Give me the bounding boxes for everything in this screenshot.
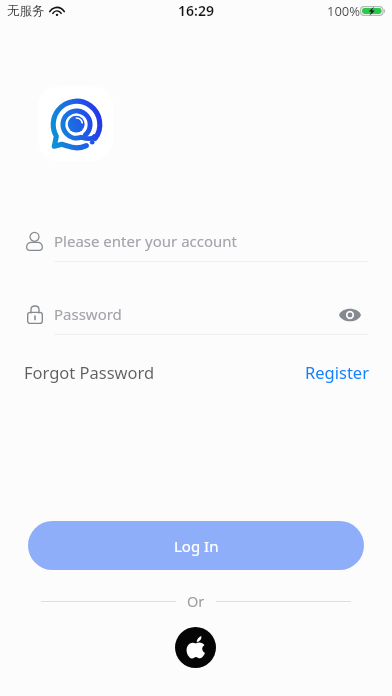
button[interactable]: Forgot Password <box>24 361 155 383</box>
staticText: Or <box>187 591 205 611</box>
staticText: Log In <box>174 536 219 556</box>
staticText: 无服务 <box>7 3 45 19</box>
button[interactable]: Sign in with Apple <box>175 627 216 668</box>
staticText: 100% <box>327 2 361 20</box>
button[interactable]: Show password <box>337 302 362 327</box>
staticText: 16:29 <box>178 1 214 20</box>
button[interactable]: Password <box>23 299 323 329</box>
staticText: Please enter your account <box>54 231 238 251</box>
button[interactable]: Please enter your account <box>23 226 367 256</box>
staticText: Password <box>54 304 122 324</box>
button[interactable]: Register <box>305 361 369 383</box>
button[interactable]: Log In <box>28 521 364 570</box>
